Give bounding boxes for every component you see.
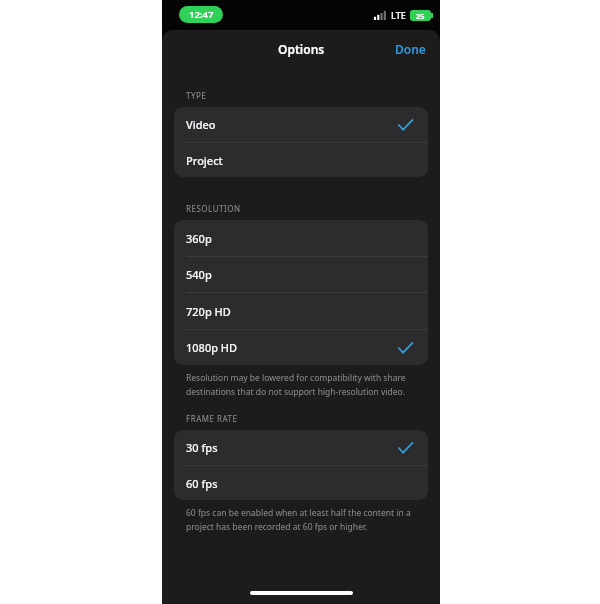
staticText: 60 fps	[186, 476, 218, 491]
staticText: Video	[186, 117, 216, 132]
staticText: 1080p HD	[186, 340, 238, 355]
button[interactable]: 30 fps	[174, 430, 428, 466]
staticText: LTE	[391, 9, 406, 21]
button[interactable]: 1080p HD	[174, 330, 428, 365]
button[interactable]: Video	[174, 107, 428, 143]
other: Selected	[174, 342, 413, 354]
staticText: 30 fps	[186, 440, 218, 455]
staticText: Project	[186, 153, 223, 168]
button[interactable]: 60 fps	[174, 466, 428, 500]
staticText: 360p	[186, 231, 212, 246]
other: Selected	[174, 119, 413, 131]
button[interactable]: Done	[381, 32, 440, 66]
staticText: 60 fps can be enabled when at least half…	[186, 507, 414, 532]
staticText: RESOLUTION	[186, 203, 241, 214]
other: Selected	[174, 442, 413, 454]
button[interactable]: Project	[174, 143, 428, 177]
staticText: Done	[395, 41, 426, 57]
button[interactable]: 360p	[174, 220, 428, 257]
staticText: 540p	[186, 267, 212, 282]
button[interactable]: 720p HD	[174, 293, 428, 330]
staticText: Options	[278, 41, 325, 57]
staticText: FRAME RATE	[186, 413, 238, 424]
staticText: 720p HD	[186, 304, 231, 319]
staticText: Resolution may be lowered for compatibil…	[186, 372, 414, 397]
staticText: TYPE	[186, 90, 207, 101]
staticText: 25	[416, 11, 425, 21]
button[interactable]: 540p	[174, 257, 428, 293]
staticText: 12:47	[189, 8, 214, 21]
